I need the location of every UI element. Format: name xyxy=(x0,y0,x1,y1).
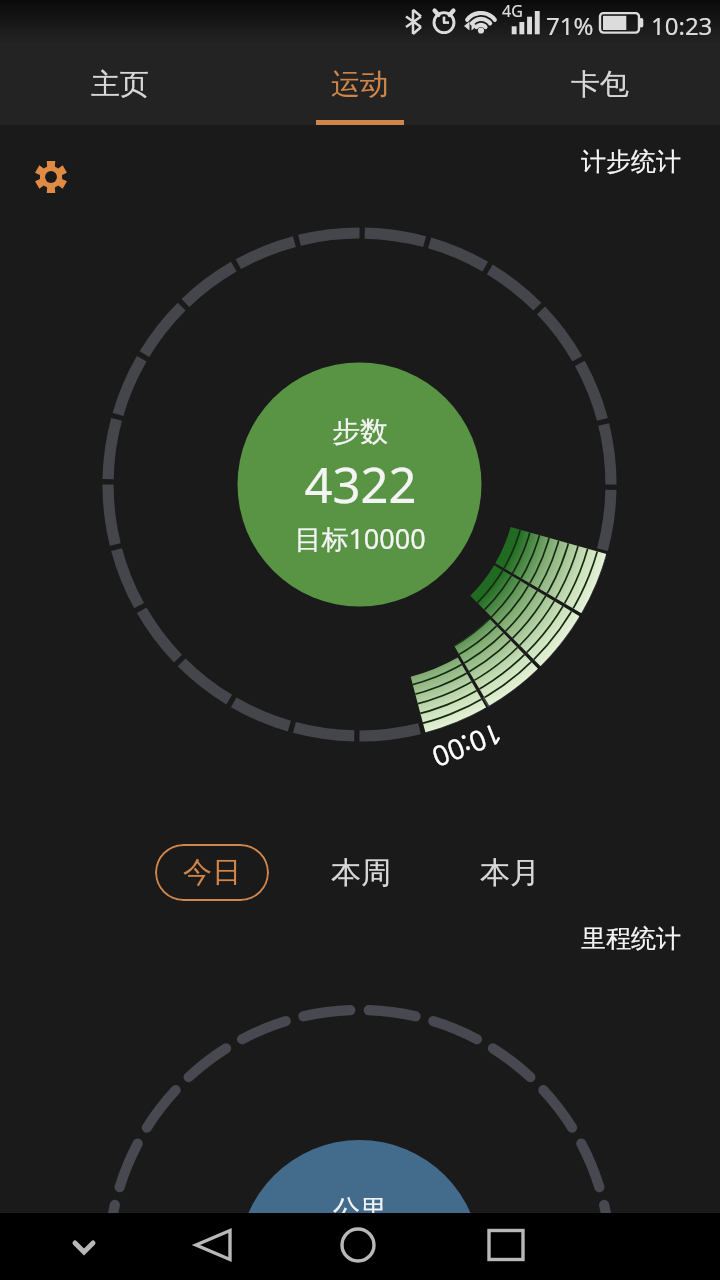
button[interactable]: 今日 xyxy=(155,844,269,901)
button[interactable]: Hide keyboard xyxy=(44,1213,124,1280)
staticText: 目标10000 xyxy=(294,520,426,557)
button[interactable]: 运动 xyxy=(240,45,480,125)
staticText: 卡包 xyxy=(571,66,629,103)
staticText: 本月 xyxy=(480,854,540,892)
staticText: 步数 xyxy=(332,414,388,449)
staticText: 运动 xyxy=(331,66,389,103)
button[interactable]: Home xyxy=(318,1213,398,1280)
button[interactable]: 卡包 xyxy=(480,45,720,125)
staticText: 4G xyxy=(502,0,523,22)
staticText: 71% xyxy=(546,9,594,42)
staticText: 今日 xyxy=(183,854,241,891)
button[interactable]: 本月 xyxy=(453,844,567,901)
staticText: 4322 xyxy=(304,451,417,518)
staticText: 本周 xyxy=(331,854,391,892)
button[interactable]: 主页 xyxy=(0,45,240,125)
button[interactable]: Settings xyxy=(27,153,75,201)
button[interactable]: Back xyxy=(173,1213,253,1280)
staticText: 10:00 xyxy=(426,715,507,777)
button[interactable]: 本周 xyxy=(304,844,418,901)
staticText: 里程统计 xyxy=(581,923,681,954)
staticText: 10:23 xyxy=(651,9,713,42)
staticText: 计步统计 xyxy=(581,146,681,177)
staticText: 主页 xyxy=(91,66,149,103)
staticText: 公里 xyxy=(333,1193,387,1227)
button[interactable]: Recent apps xyxy=(466,1213,546,1280)
